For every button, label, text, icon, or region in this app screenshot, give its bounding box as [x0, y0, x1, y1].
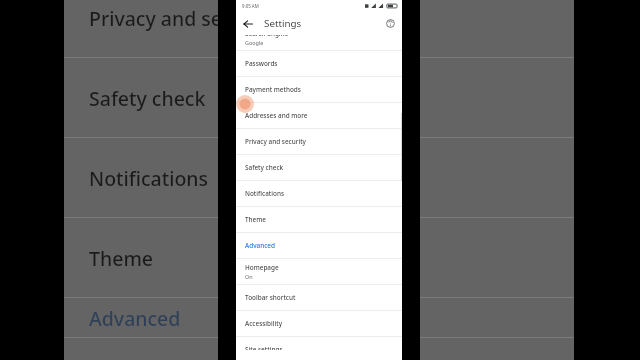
button[interactable]: Toolbar shortcut — [236, 285, 402, 311]
staticText: On — [245, 273, 253, 280]
staticText: Passwords — [245, 59, 278, 68]
staticText: Settings — [264, 17, 302, 30]
button[interactable]: Privacy and security — [236, 129, 402, 155]
staticText: Homepage — [245, 263, 279, 272]
button[interactable]: Notifications — [236, 181, 402, 207]
button[interactable]: Theme — [236, 207, 402, 233]
staticText: Privacy and security — [245, 137, 306, 146]
staticText: Search engine — [245, 35, 289, 38]
button[interactable]: Safety check — [236, 155, 402, 181]
button[interactable]: Accessibility — [236, 311, 402, 337]
staticText: 9:05 AM — [242, 3, 259, 9]
button[interactable]: Help and feedback — [379, 12, 402, 35]
staticText: Advanced — [245, 241, 275, 250]
staticText: Payment methods — [245, 85, 301, 94]
staticText: Addresses and more — [245, 111, 308, 120]
button[interactable]: Back — [236, 12, 259, 35]
staticText: Theme — [89, 245, 154, 272]
button[interactable]: Passwords — [236, 51, 402, 77]
staticText: Notifications — [89, 165, 209, 192]
staticText: Safety check — [245, 163, 284, 172]
staticText: Safety check — [89, 85, 206, 112]
staticText: Advanced — [89, 305, 181, 332]
staticText: Theme — [245, 215, 266, 224]
staticText: Google — [245, 39, 264, 46]
staticText: Toolbar shortcut — [245, 293, 296, 302]
button[interactable]: Site settings — [236, 337, 402, 350]
staticText: Privacy and security — [89, 5, 218, 32]
staticText: Notifications — [245, 189, 285, 198]
button[interactable]: Homepage — [236, 259, 402, 285]
button[interactable]: Addresses and more — [236, 103, 402, 129]
staticText: Site settings — [245, 345, 283, 350]
staticText: Accessibility — [245, 319, 283, 328]
button[interactable]: Search engine — [236, 35, 402, 51]
button[interactable]: Payment methods — [236, 77, 402, 103]
button[interactable]: Advanced — [236, 233, 402, 259]
